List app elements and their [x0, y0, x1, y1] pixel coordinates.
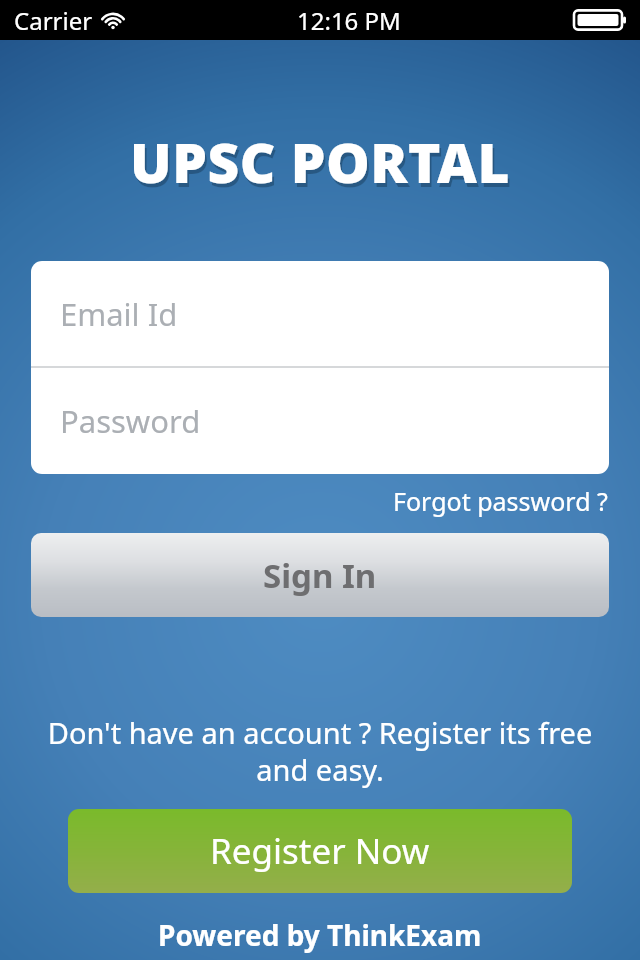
staticText: UPSC PORTAL [130, 124, 511, 199]
staticText: Carrier [14, 4, 93, 37]
staticText: Email Id [60, 293, 178, 335]
staticText: Register Now [210, 827, 430, 875]
staticText: 12:16 PM [297, 4, 401, 37]
staticText: Powered by ThinkExam [158, 916, 482, 954]
staticText: Forgot password ? [393, 484, 608, 518]
button[interactable]: Email Id [31, 261, 609, 366]
staticText: Don't have an account ? Register its fre… [34, 713, 606, 790]
staticText: Sign In [263, 553, 377, 598]
button[interactable]: Register Now [68, 809, 572, 893]
button[interactable]: Sign In [31, 533, 609, 617]
button[interactable]: Forgot password ? [389, 480, 612, 522]
staticText: Password [60, 400, 201, 442]
staticText: UPSC PORTAL [132, 128, 513, 203]
button[interactable]: Password [31, 368, 609, 474]
